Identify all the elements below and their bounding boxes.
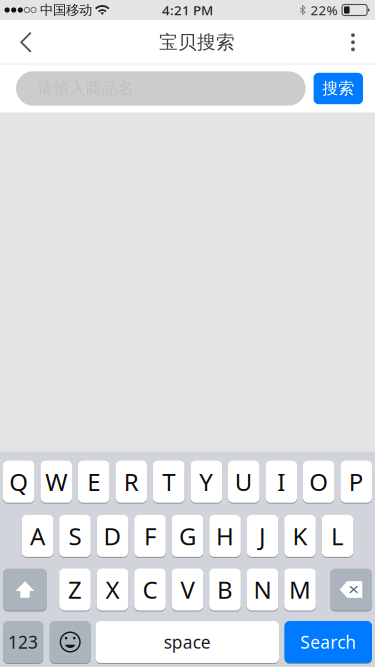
- staticText: R: [124, 466, 139, 498]
- staticText: 请输入商品名: [37, 79, 133, 98]
- button[interactable]: N: [247, 568, 278, 611]
- button[interactable]: E: [78, 461, 109, 504]
- button[interactable]: V: [172, 568, 203, 611]
- button[interactable]: Shift: [3, 568, 47, 611]
- staticText: G: [179, 520, 196, 552]
- button[interactable]: space: [95, 621, 279, 664]
- staticText: H: [216, 520, 234, 552]
- staticText: F: [144, 520, 156, 552]
- button[interactable]: Emoji keyboard: [50, 621, 91, 664]
- button[interactable]: Z: [59, 568, 91, 611]
- staticText: J: [259, 520, 266, 552]
- staticText: B: [217, 574, 233, 605]
- button[interactable]: Delete: [330, 568, 372, 611]
- button[interactable]: Q: [3, 461, 34, 504]
- button[interactable]: B: [209, 568, 241, 611]
- staticText: 4:21 PM: [162, 1, 213, 19]
- button[interactable]: A: [22, 515, 53, 558]
- button[interactable]: P: [340, 461, 372, 504]
- staticText: K: [292, 520, 307, 552]
- staticText: P: [349, 466, 364, 498]
- staticText: Q: [9, 466, 28, 498]
- staticText: D: [103, 520, 121, 552]
- staticText: A: [30, 520, 45, 552]
- button[interactable]: O: [303, 461, 334, 504]
- button[interactable]: F: [134, 515, 166, 558]
- staticText: X: [105, 574, 119, 605]
- button[interactable]: X: [97, 568, 128, 611]
- button[interactable]: U: [228, 461, 259, 504]
- staticText: W: [45, 466, 67, 498]
- staticText: 中国移动: [40, 2, 92, 18]
- button[interactable]: 搜索: [314, 73, 363, 104]
- button[interactable]: K: [284, 515, 316, 558]
- staticText: Y: [199, 466, 213, 498]
- button[interactable]: 123: [3, 621, 43, 664]
- button[interactable]: I: [265, 461, 297, 504]
- button[interactable]: M: [284, 568, 316, 611]
- staticText: Z: [68, 574, 82, 605]
- button[interactable]: R: [115, 461, 147, 504]
- button[interactable]: H: [209, 515, 241, 558]
- button[interactable]: L: [322, 515, 353, 558]
- staticText: E: [87, 466, 100, 498]
- staticText: O: [309, 466, 328, 498]
- button[interactable]: G: [172, 515, 203, 558]
- button[interactable]: More options: [331, 20, 375, 64]
- staticText: 宝贝搜索: [159, 31, 235, 54]
- staticText: T: [162, 466, 175, 498]
- staticText: space: [164, 630, 211, 653]
- button[interactable]: S: [59, 515, 91, 558]
- button[interactable]: W: [40, 461, 72, 504]
- button[interactable]: Back: [0, 20, 52, 64]
- button[interactable]: Search: [284, 621, 372, 664]
- staticText: I: [277, 466, 285, 498]
- staticText: M: [289, 574, 311, 605]
- staticText: U: [235, 466, 253, 498]
- staticText: L: [331, 520, 344, 552]
- button[interactable]: D: [97, 515, 128, 558]
- staticText: Search: [300, 630, 356, 653]
- staticText: 搜索: [322, 79, 354, 98]
- staticText: S: [68, 520, 81, 552]
- button[interactable]: Y: [190, 461, 222, 504]
- button[interactable]: J: [247, 515, 278, 558]
- staticText: C: [142, 574, 157, 605]
- staticText: V: [180, 574, 194, 605]
- button[interactable]: C: [134, 568, 166, 611]
- button[interactable]: T: [153, 461, 184, 504]
- staticText: 22%: [311, 1, 338, 19]
- staticText: 123: [8, 630, 38, 653]
- staticText: N: [253, 574, 271, 605]
